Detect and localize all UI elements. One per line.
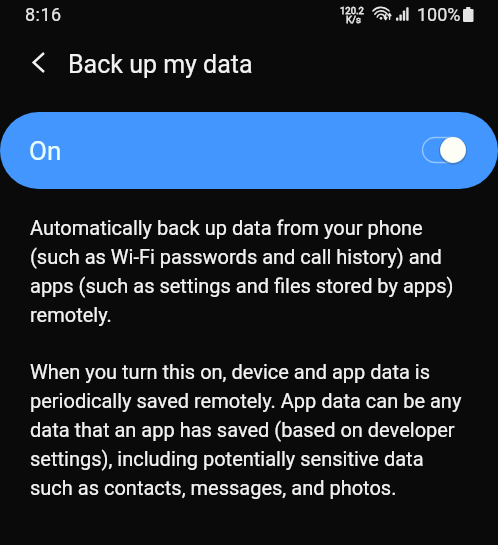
staticText: 100% [417, 4, 461, 25]
staticText: 120.2 [340, 5, 364, 16]
button[interactable]: Navigate up [14, 38, 62, 86]
staticText: 8:16 [25, 4, 62, 25]
staticText: Automatically back up data from your pho… [30, 212, 490, 328]
staticText: Back up my data [68, 50, 253, 79]
other: Battery full [463, 7, 474, 23]
other: Wi-Fi and mobile signal [370, 1, 410, 31]
staticText: On [29, 136, 62, 166]
staticText: When you turn this on, device and app da… [30, 356, 490, 501]
staticText: K/s [346, 14, 361, 25]
button[interactable]: Back up my data, On [0, 112, 498, 189]
